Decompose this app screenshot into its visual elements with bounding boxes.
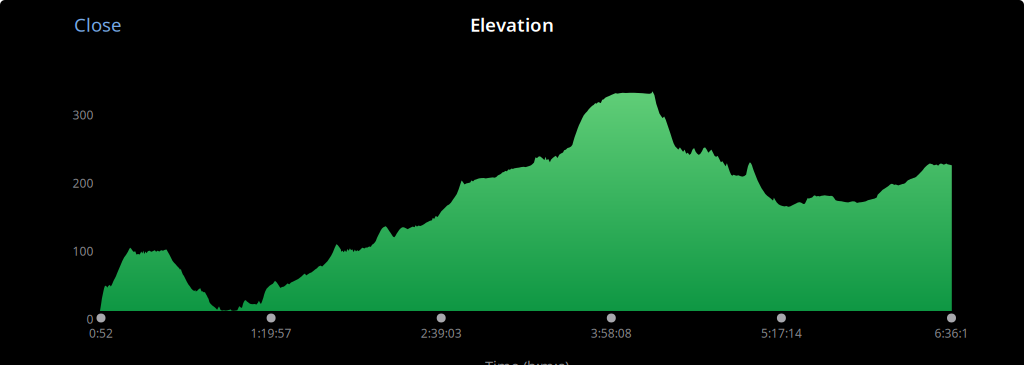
staticText: 0:52 [89,325,113,341]
staticText: 6:36:1 [934,325,968,341]
button[interactable]: Close [74,12,122,37]
staticText: 1:19:57 [251,325,292,341]
staticText: Elevation [470,12,554,37]
staticText: 5:17:14 [761,325,802,341]
staticText: 100 [72,243,93,259]
staticText: Close [74,12,122,37]
staticText: 300 [72,107,93,123]
staticText: 200 [72,175,93,191]
staticText: 2:39:03 [421,325,462,341]
staticText: 3:58:08 [591,325,632,341]
staticText: Time (h:m:s) [485,356,569,365]
staticText: 0 [86,311,93,327]
